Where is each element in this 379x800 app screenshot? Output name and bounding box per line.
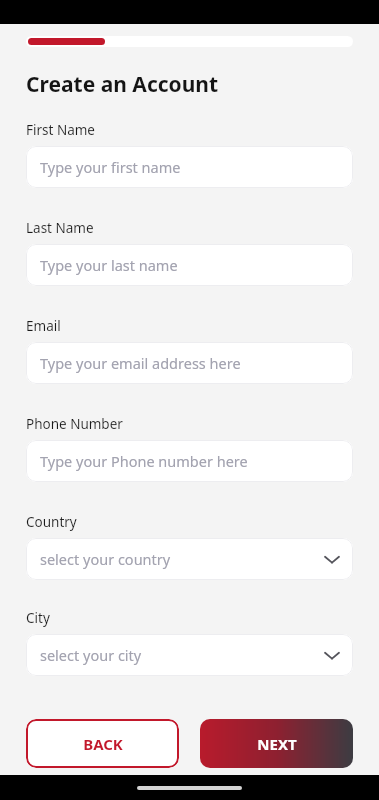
staticText: Type your Phone number here <box>40 451 339 471</box>
staticText: City <box>26 609 50 627</box>
staticText: Last Name <box>26 219 94 237</box>
staticText: NEXT <box>257 734 297 754</box>
staticText: Country <box>26 513 77 531</box>
staticText: Phone Number <box>26 415 123 433</box>
button[interactable]: Type your Phone number here <box>26 440 353 482</box>
staticText: select your country <box>40 549 325 569</box>
button[interactable]: Type your first name <box>26 146 353 188</box>
staticText: Type your email address here <box>40 353 339 373</box>
button[interactable]: Type your last name <box>26 244 353 286</box>
button[interactable]: select your city <box>26 634 353 676</box>
button[interactable]: NEXT <box>200 719 353 768</box>
button[interactable]: BACK <box>26 719 179 768</box>
button[interactable]: Type your email address here <box>26 342 353 384</box>
staticText: First Name <box>26 121 95 139</box>
button[interactable]: select your country <box>26 538 353 580</box>
staticText: BACK <box>83 734 123 754</box>
staticText: Type your last name <box>40 255 339 275</box>
staticText: Type your first name <box>40 157 339 177</box>
staticText: Email <box>26 317 61 335</box>
staticText: Create an Account <box>26 70 219 99</box>
staticText: select your city <box>40 645 325 665</box>
